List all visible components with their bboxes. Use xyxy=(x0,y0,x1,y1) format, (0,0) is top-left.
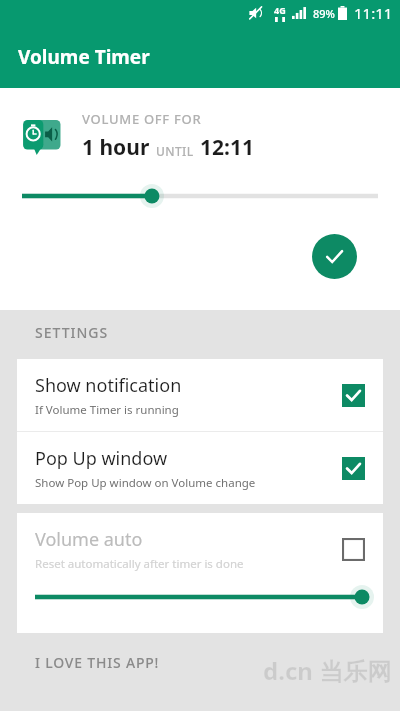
button[interactable]: Pop Up window xyxy=(17,432,383,504)
staticText: I LOVE THIS APP! xyxy=(35,653,160,672)
button[interactable]: Checked xyxy=(342,384,365,407)
staticText: Show Pop Up window on Volume change xyxy=(35,475,256,491)
staticText: 12:11 xyxy=(200,133,254,162)
staticText: 4G xyxy=(274,4,286,16)
staticText: VOLUME OFF FOR xyxy=(82,110,202,128)
staticText: 89% xyxy=(313,6,335,21)
button[interactable]: Slider xyxy=(22,184,378,208)
button[interactable]: Slider xyxy=(35,585,367,609)
staticText: If Volume Timer is running xyxy=(35,402,179,418)
button[interactable]: Volume auto xyxy=(17,513,383,585)
staticText: d.cn 当乐网 xyxy=(263,654,392,687)
staticText: Show notification xyxy=(35,373,182,398)
staticText: Reset automatically after timer is done xyxy=(35,556,244,572)
staticText: UNTIL xyxy=(156,143,194,159)
other: Volume Timer icon xyxy=(20,115,64,157)
staticText: 11:11 xyxy=(354,3,393,23)
staticText: Volume auto xyxy=(35,527,143,552)
button[interactable]: Checked xyxy=(342,457,365,480)
staticText: Pop Up window xyxy=(35,446,168,471)
staticText: 1 hour xyxy=(82,133,150,162)
staticText: Volume Timer xyxy=(18,44,150,70)
button[interactable]: Unchecked xyxy=(342,538,365,561)
button[interactable]: Show notification xyxy=(17,359,383,431)
button[interactable]: Confirm xyxy=(312,234,357,279)
staticText: SETTINGS xyxy=(35,323,109,342)
